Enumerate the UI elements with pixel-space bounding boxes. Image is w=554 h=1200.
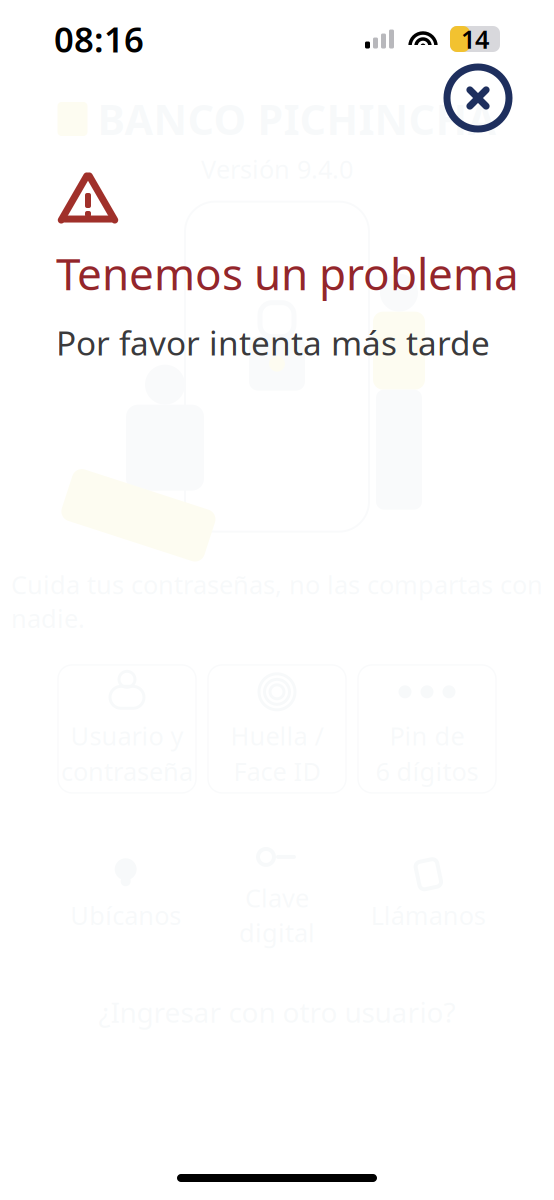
staticText: BANCO PICHINCHA — [97, 92, 496, 146]
staticText: Tenemos un problema — [56, 244, 519, 302]
button[interactable]: Cerrar — [442, 62, 514, 134]
staticText: 08:16 — [54, 16, 144, 62]
staticText: 14 — [461, 22, 489, 56]
staticText: Por favor intenta más tarde — [56, 320, 490, 365]
